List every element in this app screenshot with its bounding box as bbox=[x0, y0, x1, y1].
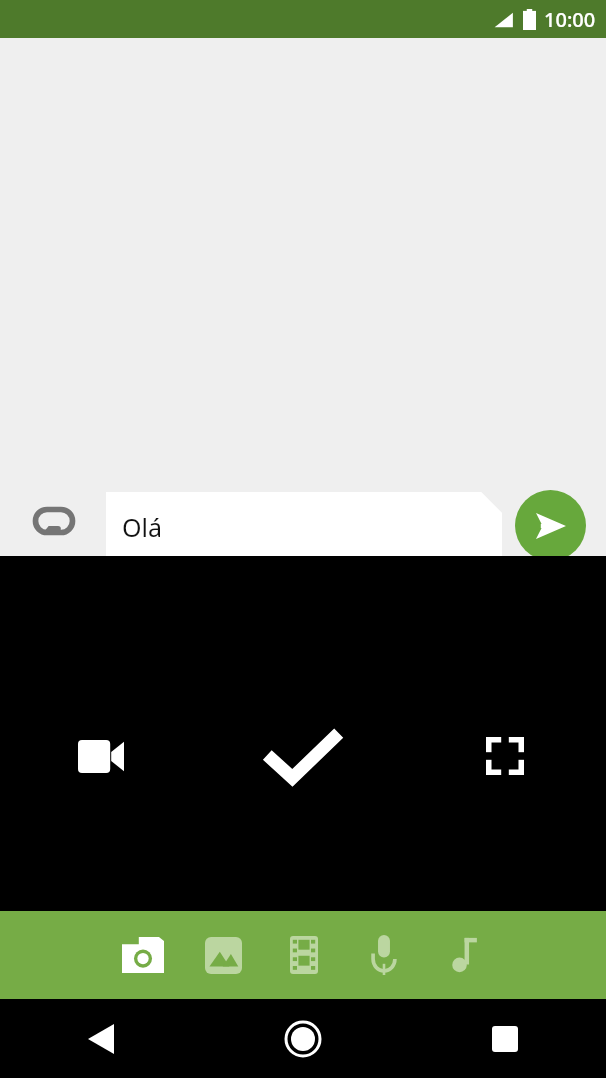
button[interactable]: Home bbox=[202, 999, 404, 1078]
button[interactable]: Camera bbox=[102, 911, 183, 999]
button[interactable]: Audio recording bbox=[344, 911, 424, 999]
button[interactable]: Recent apps bbox=[404, 999, 606, 1078]
staticText: 10:00 bbox=[544, 6, 596, 33]
button[interactable]: Send bbox=[515, 490, 586, 561]
button[interactable]: Record video bbox=[0, 711, 202, 801]
button[interactable]: Attach bbox=[22, 490, 86, 552]
button[interactable]: Video bbox=[264, 911, 344, 999]
button[interactable]: Gallery bbox=[183, 911, 264, 999]
button[interactable]: Back bbox=[0, 999, 202, 1078]
button[interactable]: Music bbox=[424, 911, 504, 999]
button[interactable]: Fullscreen bbox=[404, 711, 606, 801]
staticText: Olá bbox=[122, 510, 163, 544]
button[interactable]: Accept bbox=[202, 701, 404, 811]
